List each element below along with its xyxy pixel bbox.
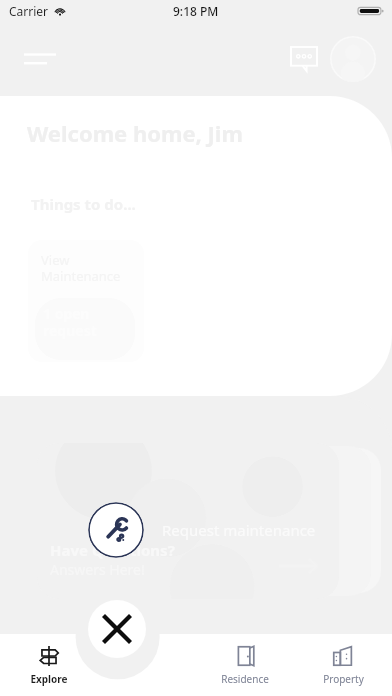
staticText: Property (323, 672, 364, 686)
button[interactable]: Messages (284, 39, 324, 79)
staticText: Have Questions? (50, 540, 175, 560)
staticText: 9:18 PM (173, 3, 219, 19)
button[interactable]: Menu (18, 37, 62, 81)
staticText: Request maintenance (162, 520, 316, 540)
staticText: Carrier (9, 3, 49, 19)
button[interactable]: Property (294, 634, 392, 696)
button[interactable]: Have Questions? (37, 443, 339, 599)
button[interactable]: Request maintenance (0, 500, 316, 560)
button[interactable]: Close (88, 600, 146, 658)
staticText: Explore (30, 672, 68, 686)
button[interactable]: Explore (0, 634, 98, 696)
staticText: Residence (221, 672, 269, 686)
staticText: Things to do... (31, 194, 136, 214)
staticText: Welcome home, Jim (27, 118, 243, 148)
button[interactable]: Residence (196, 634, 294, 696)
